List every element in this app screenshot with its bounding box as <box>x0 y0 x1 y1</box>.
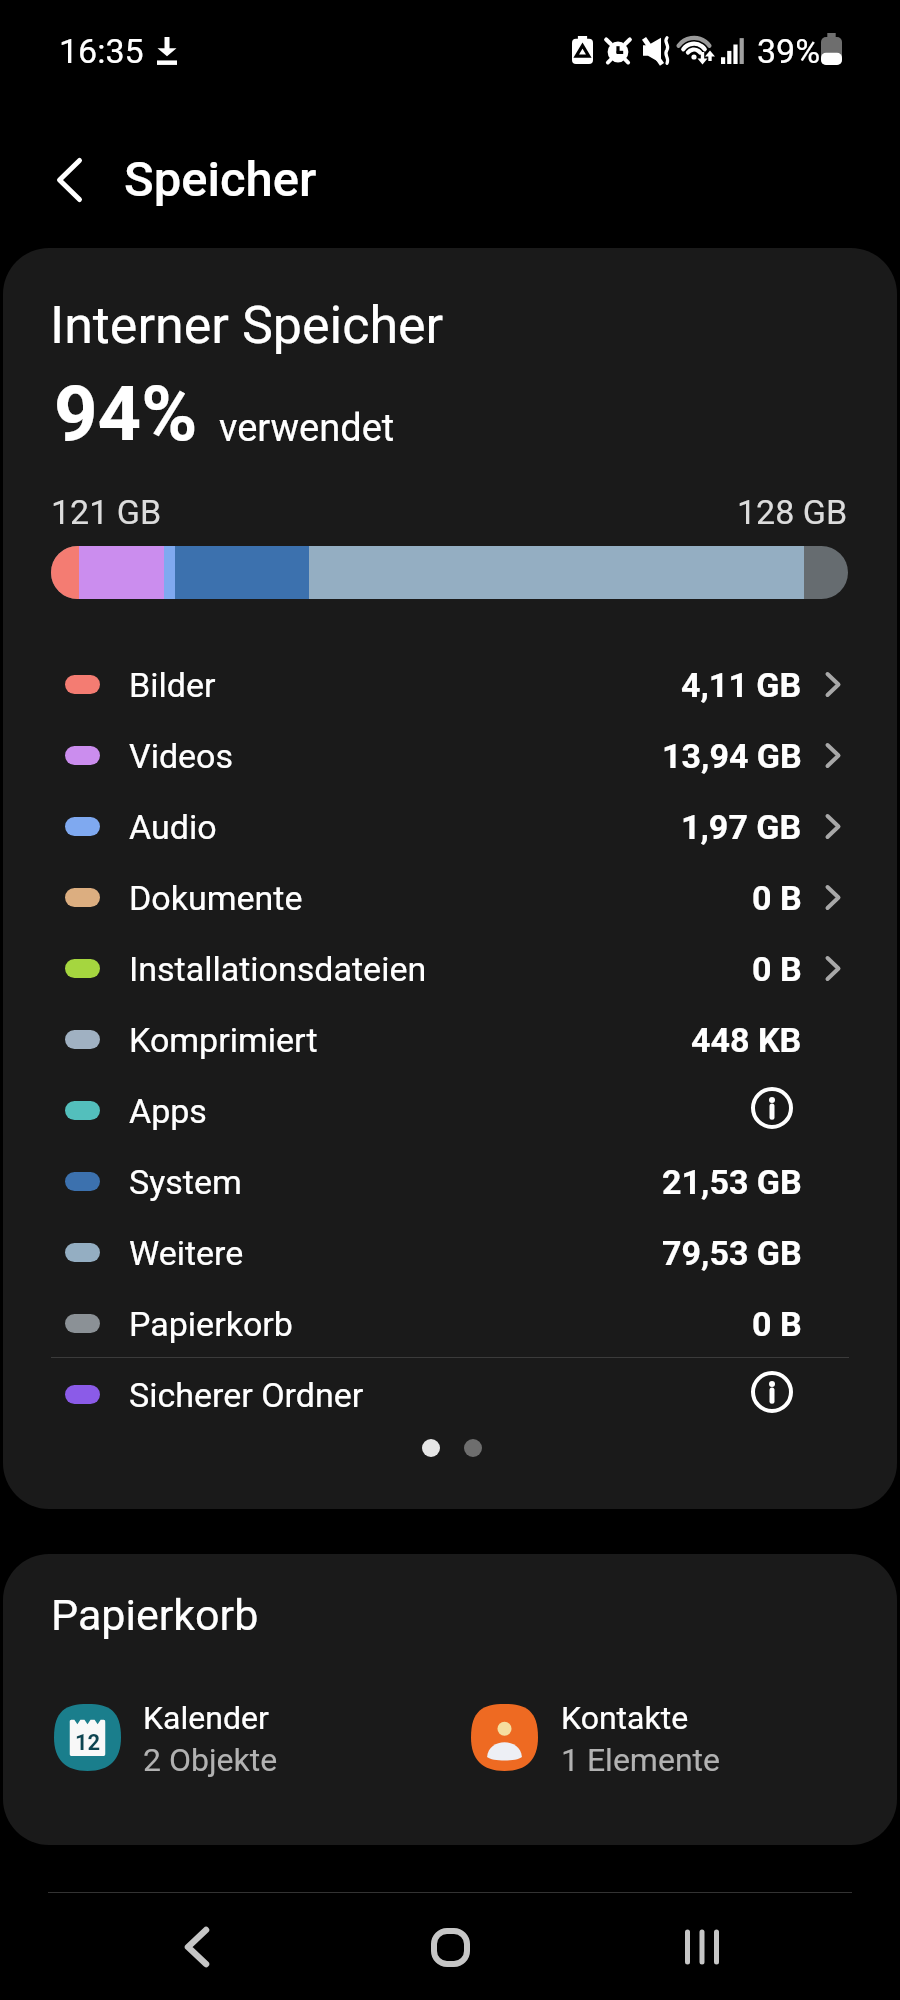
staticText: Papierkorb <box>51 1590 259 1640</box>
button[interactable]: Sicherer Ordner <box>3 1359 897 1430</box>
staticText: Sicherer Ordner <box>129 1375 364 1415</box>
staticText: Installationsdateien <box>129 949 427 989</box>
staticText: Bilder <box>129 665 216 705</box>
button[interactable]: Komprimiert <box>3 1004 897 1075</box>
staticText: Komprimiert <box>129 1020 318 1060</box>
button[interactable]: Audio <box>3 791 897 862</box>
staticText: 94% <box>54 369 198 458</box>
button[interactable]: Weitere <box>3 1217 897 1288</box>
staticText: 121 GB <box>51 492 162 532</box>
button[interactable]: Apps <box>3 1075 897 1146</box>
staticText: 21,53 GB <box>662 1162 802 1202</box>
staticText: 448 KB <box>691 1020 802 1060</box>
staticText: 39% <box>757 31 821 71</box>
staticText: 128 GB <box>737 492 848 532</box>
staticText: 0 B <box>752 1304 802 1344</box>
staticText: Kontakte <box>561 1699 689 1737</box>
staticText: System <box>129 1162 242 1202</box>
staticText: 4,11 GB <box>681 665 802 705</box>
button[interactable]: Info <box>746 1082 798 1134</box>
staticText: 1,97 GB <box>681 807 802 847</box>
button[interactable]: Info <box>746 1366 798 1418</box>
button[interactable]: Installationsdateien <box>3 933 897 1004</box>
button[interactable]: System <box>3 1146 897 1217</box>
staticText: 1 Elemente <box>561 1741 720 1779</box>
staticText: Weitere <box>129 1233 244 1273</box>
staticText: 0 B <box>752 878 802 918</box>
button[interactable]: Zurück <box>137 1887 257 2000</box>
staticText: Speicher <box>124 151 317 208</box>
staticText: 16:35 <box>59 31 144 71</box>
staticText: Dokumente <box>129 878 303 918</box>
staticText: Videos <box>129 736 234 776</box>
button[interactable]: Zurück <box>34 145 104 215</box>
staticText: verwendet <box>219 406 395 451</box>
staticText: Papierkorb <box>129 1304 293 1344</box>
button[interactable]: Bilder <box>3 649 897 720</box>
button[interactable]: Papierkorb <box>3 1288 897 1359</box>
staticText: 13,94 GB <box>662 736 802 776</box>
staticText: 79,53 GB <box>662 1233 802 1273</box>
staticText: Interner Speicher <box>50 295 444 356</box>
button[interactable]: Videos <box>3 720 897 791</box>
button[interactable]: Kontakte <box>466 1696 756 1778</box>
button[interactable]: Letzte Apps <box>642 1887 762 2000</box>
staticText: Apps <box>129 1091 207 1131</box>
staticText: Audio <box>129 807 217 847</box>
staticText: 12 <box>75 1730 101 1756</box>
button[interactable]: Dokumente <box>3 862 897 933</box>
staticText: Kalender <box>143 1699 269 1737</box>
staticText: 0 B <box>752 949 802 989</box>
button[interactable]: 12 <box>49 1696 339 1778</box>
staticText: 2 Objekte <box>143 1741 278 1779</box>
button[interactable]: Startbildschirm <box>390 1887 510 2000</box>
